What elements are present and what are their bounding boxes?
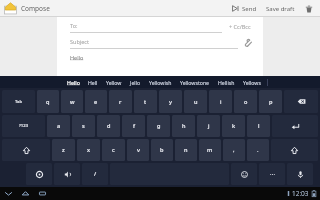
staticText: Send [242,5,257,13]
button[interactable]: Yellowish [145,76,176,88]
button[interactable]: p [259,90,282,113]
button[interactable]: a [47,115,70,137]
staticText: h [182,122,186,130]
staticText: Hell [88,79,98,86]
button[interactable]: Send [230,0,259,17]
button[interactable]: Yellow [102,76,126,88]
staticText: n [184,146,188,154]
button[interactable]: Hello [70,53,253,76]
staticText: . [257,146,259,154]
staticText: Tab [15,99,23,105]
staticText: v [137,146,140,154]
button[interactable]: Enter [272,115,318,137]
button[interactable]: f [122,115,145,137]
button[interactable]: Compose [3,0,51,17]
button[interactable]: Settings [26,163,52,185]
button[interactable]: Sound [54,163,80,185]
button[interactable]: Tab [2,90,35,113]
staticText: b [160,146,164,154]
button[interactable]: Yellows [239,76,265,88]
staticText: Compose [21,4,50,13]
button[interactable]: , [223,139,245,161]
button[interactable]: Emoji [231,163,257,185]
staticText: i [220,98,222,106]
staticText: Yellow [106,79,122,86]
staticText: Hello [67,79,80,86]
button[interactable]: Recent apps [36,187,49,200]
staticText: + Cc/Bcc [229,23,251,30]
button[interactable]: Back [2,187,15,200]
staticText: r [119,98,122,106]
button[interactable]: h [172,115,195,137]
staticText: g [157,122,161,130]
staticText: t [144,98,147,106]
button[interactable]: y [159,90,182,113]
button[interactable]: o [234,90,257,113]
button[interactable]: + Cc/Bcc [227,20,253,33]
button[interactable]: x [77,139,100,161]
staticText: f [133,122,135,130]
button[interactable]: Shift [271,139,318,161]
button[interactable]: z [52,139,75,161]
staticText: 12:03 [292,189,309,198]
staticText: a [57,122,61,130]
staticText: / [94,170,97,178]
button[interactable]: b [151,139,173,161]
staticText: q [46,98,50,106]
button[interactable]: v [127,139,149,161]
button[interactable]: ?123 [2,115,45,137]
button[interactable]: i [209,90,232,113]
staticText: ?123 [19,123,29,129]
staticText: To: [70,22,78,29]
button[interactable]: s [72,115,95,137]
button[interactable]: Backspace [284,90,318,113]
button[interactable]: Hell [84,76,102,88]
button[interactable]: k [222,115,245,137]
button[interactable]: Voice input [287,163,313,185]
button[interactable]: Jello [126,76,145,88]
staticText: z [62,146,65,154]
button[interactable]: Home [19,187,32,200]
staticText: w [70,98,75,106]
staticText: k [232,122,236,130]
button[interactable]: Save draft [264,0,297,17]
button[interactable]: n [175,139,197,161]
button[interactable]: Subject [70,36,238,49]
button[interactable]: q [37,90,59,113]
staticText: x [87,146,91,154]
button[interactable]: Hello [63,76,84,88]
staticText: Hellish [218,79,235,86]
staticText: d [107,122,111,130]
staticText: Hello [70,54,84,61]
button[interactable]: Attach file [242,37,253,48]
button[interactable]: m [199,139,221,161]
staticText: l [258,122,260,130]
button[interactable]: e [85,90,107,113]
button[interactable]: To: [70,20,222,33]
staticText: Subject [70,38,89,45]
button[interactable]: d [97,115,120,137]
staticText: u [194,98,198,106]
button[interactable]: / [82,163,108,185]
button[interactable]: t [134,90,157,113]
staticText: Yellowstone [180,79,210,86]
staticText: , [233,146,235,154]
button[interactable]: c [102,139,125,161]
staticText: Save draft [266,5,295,13]
button[interactable]: . [247,139,269,161]
staticText: o [244,98,248,106]
button[interactable]: Hellish [214,76,239,88]
staticText: s [82,122,85,130]
button[interactable]: Shift [2,139,50,161]
button[interactable]: j [197,115,220,137]
button[interactable]: r [109,90,132,113]
staticText: y [169,98,172,106]
button[interactable]: u [184,90,207,113]
button[interactable]: Discard [303,0,315,17]
button[interactable]: Options [259,163,285,185]
button[interactable]: l [247,115,270,137]
button[interactable]: w [61,90,83,113]
button[interactable]: g [147,115,170,137]
button[interactable]: Yellowstone [176,76,214,88]
